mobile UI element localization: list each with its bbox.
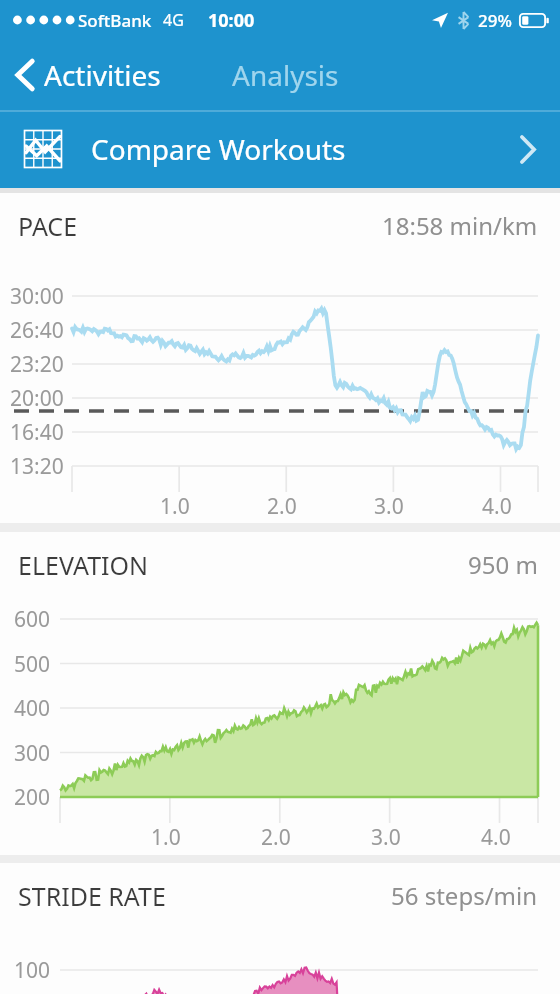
staticText: 950 m (468, 548, 538, 581)
staticText: 200 (14, 783, 51, 812)
staticText: 18:58 min/km (382, 209, 538, 242)
staticText: 600 (14, 605, 51, 634)
staticText: 4.0 (482, 492, 512, 521)
staticText: 3.0 (371, 823, 401, 852)
staticText: 13:20 (10, 452, 64, 481)
staticText: SoftBank (78, 9, 152, 32)
staticText: 300 (14, 739, 51, 768)
staticText: 400 (14, 694, 51, 723)
staticText: Compare Workouts (91, 130, 346, 168)
staticText: 1.0 (160, 492, 190, 521)
staticText: 2.0 (261, 823, 291, 852)
staticText: 4G (163, 9, 184, 31)
staticText: 3.0 (374, 492, 404, 521)
staticText: STRIDE RATE (18, 879, 166, 913)
staticText: 56 steps/min (391, 879, 538, 912)
staticText: 4.0 (481, 823, 511, 852)
staticText: 100 (14, 956, 51, 985)
other: Compare workouts chart (22, 128, 64, 170)
button[interactable]: Analysis (232, 56, 339, 94)
staticText: PACE (18, 209, 78, 243)
staticText: 16:40 (10, 418, 64, 447)
button[interactable]: Activities (10, 56, 167, 94)
staticText: 20:00 (10, 384, 64, 413)
staticText: 29% (478, 9, 512, 32)
button[interactable]: Compare workouts chart (0, 110, 560, 188)
staticText: 500 (14, 650, 51, 679)
staticText: 1.0 (151, 823, 181, 852)
staticText: ELEVATION (18, 548, 149, 582)
staticText: 30:00 (10, 282, 64, 311)
staticText: 2.0 (267, 492, 297, 521)
staticText: 26:40 (10, 316, 64, 345)
staticText: 10:00 (208, 8, 255, 33)
staticText: Activities (44, 56, 161, 94)
staticText: 23:20 (10, 350, 64, 379)
